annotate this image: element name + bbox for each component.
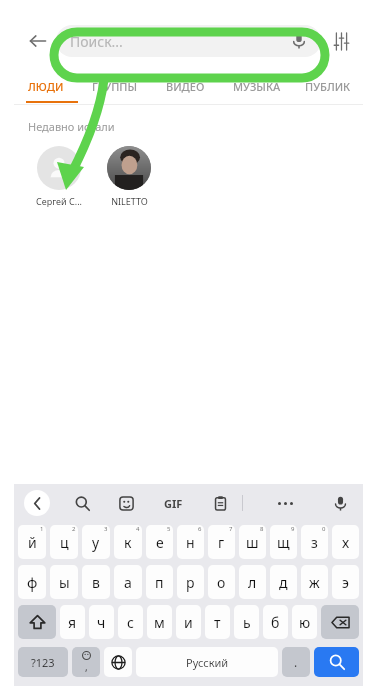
- staticText: с: [127, 613, 134, 632]
- staticText: у: [92, 533, 100, 552]
- button[interactable]: .: [282, 647, 310, 677]
- staticText: Русский: [186, 655, 229, 670]
- button[interactable]: More: [272, 490, 298, 516]
- staticText: МУЗЫКА: [233, 79, 281, 94]
- button[interactable]: ВИДЕО: [150, 68, 221, 104]
- button[interactable]: Voice input: [327, 490, 353, 516]
- button[interactable]: [321, 605, 359, 639]
- staticText: м: [154, 613, 165, 632]
- staticText: 7: [229, 525, 233, 533]
- staticText: х: [342, 533, 350, 552]
- button[interactable]: GIF: [158, 496, 188, 511]
- staticText: ы: [59, 573, 70, 592]
- button[interactable]: т: [205, 605, 230, 639]
- staticText: ВИДЕО: [166, 79, 205, 94]
- button[interactable]: ГРУППЫ: [79, 68, 150, 104]
- button[interactable]: Search: [70, 491, 94, 515]
- button[interactable]: ж: [301, 565, 328, 599]
- button[interactable]: ЛЮДИ: [28, 68, 79, 104]
- button[interactable]: Clipboard: [208, 491, 232, 515]
- staticText: .: [294, 654, 298, 670]
- button[interactable]: ш: [239, 525, 266, 559]
- button[interactable]: МУЗЫКА: [221, 68, 292, 104]
- button[interactable]: ы: [50, 565, 78, 599]
- button[interactable]: п: [146, 565, 173, 599]
- button[interactable]: ь: [234, 605, 259, 639]
- button[interactable]: ч: [89, 605, 114, 639]
- button[interactable]: б: [263, 605, 288, 639]
- button[interactable]: Поиск...: [56, 25, 321, 57]
- staticText: г: [218, 533, 225, 552]
- staticText: к: [124, 533, 132, 552]
- staticText: 0: [322, 525, 326, 533]
- staticText: ж: [309, 573, 320, 592]
- staticText: NILETTO: [111, 195, 148, 207]
- staticText: 2: [72, 525, 76, 533]
- button[interactable]: м: [147, 605, 172, 639]
- button[interactable]: и: [176, 605, 201, 639]
- staticText: 9: [291, 525, 295, 533]
- button[interactable]: н: [177, 525, 204, 559]
- button[interactable]: х: [332, 525, 359, 559]
- staticText: ?123: [31, 655, 55, 670]
- button[interactable]: з: [301, 525, 328, 559]
- staticText: я: [68, 613, 77, 632]
- button[interactable]: ?123: [18, 647, 68, 677]
- button[interactable]: [18, 605, 56, 639]
- staticText: ц: [60, 533, 69, 552]
- button[interactable]: Back: [20, 23, 56, 59]
- staticText: и: [184, 613, 193, 632]
- staticText: й: [28, 533, 37, 552]
- staticText: л: [248, 573, 257, 592]
- staticText: н: [186, 533, 195, 552]
- button[interactable]: ю: [292, 605, 317, 639]
- button[interactable]: [314, 647, 359, 677]
- staticText: 3: [104, 525, 108, 533]
- button[interactable]: я: [60, 605, 85, 639]
- button[interactable]: а: [114, 565, 142, 599]
- staticText: п: [155, 573, 164, 592]
- staticText: ф: [27, 573, 38, 592]
- button[interactable]: Сергей С...: [28, 146, 90, 207]
- button[interactable]: й: [18, 525, 46, 559]
- button[interactable]: щ: [270, 525, 297, 559]
- staticText: 6: [198, 525, 202, 533]
- staticText: 4: [136, 525, 140, 533]
- button[interactable]: г: [208, 525, 235, 559]
- button[interactable]: ,: [72, 647, 100, 677]
- button[interactable]: о: [208, 565, 235, 599]
- staticText: э: [342, 573, 349, 592]
- staticText: Недавно искали: [28, 119, 115, 134]
- button[interactable]: э: [332, 565, 359, 599]
- staticText: р: [186, 573, 195, 592]
- button[interactable]: Stickers: [114, 491, 138, 515]
- staticText: о: [217, 573, 226, 592]
- staticText: ЛЮДИ: [28, 79, 64, 94]
- button[interactable]: д: [270, 565, 297, 599]
- button[interactable]: к: [114, 525, 142, 559]
- staticText: ь: [243, 613, 251, 632]
- staticText: з: [311, 533, 318, 552]
- staticText: 8: [260, 525, 264, 533]
- button[interactable]: Collapse: [24, 490, 50, 516]
- staticText: в: [92, 573, 100, 592]
- button[interactable]: ц: [50, 525, 78, 559]
- button[interactable]: ПУБЛИК: [292, 68, 363, 104]
- button[interactable]: р: [177, 565, 204, 599]
- button[interactable]: е: [146, 525, 173, 559]
- button[interactable]: с: [118, 605, 143, 639]
- button[interactable]: Русский: [136, 647, 278, 677]
- staticText: GIF: [164, 496, 183, 511]
- button[interactable]: ф: [18, 565, 46, 599]
- button[interactable]: у: [82, 525, 110, 559]
- button[interactable]: Filters: [325, 25, 357, 57]
- staticText: Поиск...: [70, 32, 123, 51]
- button[interactable]: [104, 647, 132, 677]
- staticText: щ: [277, 533, 290, 552]
- staticText: Сергей С...: [36, 195, 82, 207]
- button[interactable]: NILETTO: [98, 146, 160, 207]
- staticText: ПУБЛИК: [305, 79, 351, 94]
- button[interactable]: в: [82, 565, 110, 599]
- button[interactable]: л: [239, 565, 266, 599]
- staticText: ш: [246, 533, 259, 552]
